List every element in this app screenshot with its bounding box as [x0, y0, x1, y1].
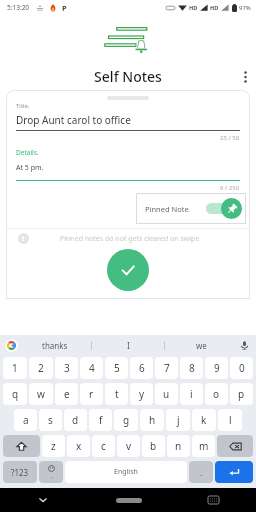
button[interactable]: i: [180, 383, 203, 405]
button[interactable]: More options: [234, 66, 256, 88]
staticText: q: [12, 387, 19, 401]
button[interactable]: y: [130, 383, 153, 405]
button[interactable]: c: [92, 435, 115, 457]
button[interactable]: Save note: [107, 249, 149, 291]
staticText: m: [199, 439, 209, 453]
button[interactable]: Enter: [215, 461, 253, 483]
button[interactable]: g: [114, 409, 138, 431]
staticText: 4: [89, 361, 95, 375]
button[interactable]: t: [105, 383, 128, 405]
staticText: y: [139, 387, 145, 401]
staticText: u: [163, 387, 170, 401]
staticText: 9 / 250: [220, 184, 240, 192]
button[interactable]: 1: [3, 357, 27, 379]
button[interactable]: 3: [55, 357, 78, 379]
staticText: thanks: [42, 340, 68, 351]
button[interactable]: b: [142, 435, 165, 457]
staticText: r: [89, 387, 94, 401]
button[interactable]: Pinned Note: [136, 193, 246, 224]
staticText: I: [127, 340, 130, 351]
button[interactable]: d: [64, 409, 87, 431]
staticText: h: [149, 413, 156, 427]
button[interactable]: ?123: [3, 461, 37, 483]
staticText: ,: [51, 472, 53, 480]
button[interactable]: e: [55, 383, 78, 405]
staticText: .: [200, 467, 203, 478]
button[interactable]: z: [42, 435, 65, 457]
staticText: t: [115, 387, 119, 401]
staticText: p: [238, 387, 245, 401]
button[interactable]: 9: [205, 357, 228, 379]
staticText: x: [76, 439, 82, 453]
staticText: d: [72, 413, 79, 427]
staticText: s: [48, 413, 53, 427]
button[interactable]: Emoji: [39, 461, 63, 483]
staticText: Pinned notes do not gets cleared on swip…: [60, 234, 200, 244]
staticText: f: [99, 413, 103, 427]
button[interactable]: 0: [230, 357, 253, 379]
button[interactable]: l: [218, 409, 242, 431]
button[interactable]: 8: [180, 357, 203, 379]
button[interactable]: thanks: [18, 335, 91, 355]
button[interactable]: o: [205, 383, 228, 405]
staticText: 6: [139, 361, 145, 375]
button[interactable]: Switch keyboard: [171, 488, 256, 512]
button[interactable]: Shift: [3, 435, 40, 457]
button[interactable]: Backspace: [217, 435, 253, 457]
staticText: z: [51, 439, 56, 453]
staticText: k: [201, 413, 207, 427]
button[interactable]: 7: [155, 357, 178, 379]
button[interactable]: w: [29, 383, 53, 405]
button[interactable]: Voice input: [237, 338, 251, 352]
button[interactable]: k: [192, 409, 216, 431]
staticText: 2: [38, 361, 44, 375]
staticText: 9: [214, 361, 220, 375]
staticText: HD: [189, 4, 198, 11]
staticText: 0: [239, 361, 245, 375]
staticText: 3: [64, 361, 70, 375]
staticText: 5:13:20: [7, 3, 30, 12]
button[interactable]: we: [165, 335, 237, 355]
staticText: 5: [114, 361, 120, 375]
button[interactable]: .: [189, 461, 213, 483]
staticText: v: [126, 439, 132, 453]
button[interactable]: s: [39, 409, 62, 431]
staticText: l: [229, 413, 232, 427]
button[interactable]: u: [155, 383, 178, 405]
button[interactable]: x: [67, 435, 90, 457]
button[interactable]: English: [65, 461, 187, 483]
button[interactable]: a: [14, 409, 37, 431]
button[interactable]: I: [92, 335, 164, 355]
button[interactable]: j: [166, 409, 190, 431]
staticText: n: [175, 439, 182, 453]
button[interactable]: 6: [130, 357, 153, 379]
button[interactable]: p: [230, 383, 253, 405]
staticText: English: [114, 467, 138, 477]
staticText: 97%: [239, 4, 251, 12]
button[interactable]: 5: [105, 357, 128, 379]
staticText: b: [150, 439, 157, 453]
button[interactable]: v: [117, 435, 140, 457]
button[interactable]: n: [167, 435, 190, 457]
staticText: g: [123, 413, 130, 427]
staticText: Pinned Note: [145, 204, 189, 214]
staticText: 7: [164, 361, 170, 375]
button[interactable]: r: [80, 383, 103, 405]
button[interactable]: 2: [29, 357, 53, 379]
staticText: w: [37, 387, 45, 401]
staticText: j: [177, 413, 180, 427]
staticText: At 5 pm.: [16, 163, 44, 173]
button[interactable]: Hide keyboard: [0, 488, 86, 512]
staticText: i: [22, 234, 25, 244]
button[interactable]: f: [89, 409, 112, 431]
staticText: 8: [189, 361, 195, 375]
staticText: 1: [12, 361, 18, 375]
button[interactable]: Home: [86, 488, 171, 512]
button[interactable]: 4: [80, 357, 103, 379]
button[interactable]: Google: [5, 339, 18, 352]
button[interactable]: q: [3, 383, 27, 405]
button[interactable]: h: [140, 409, 164, 431]
staticText: o: [213, 387, 220, 401]
button[interactable]: m: [192, 435, 215, 457]
staticText: 25 / 50: [220, 134, 240, 142]
